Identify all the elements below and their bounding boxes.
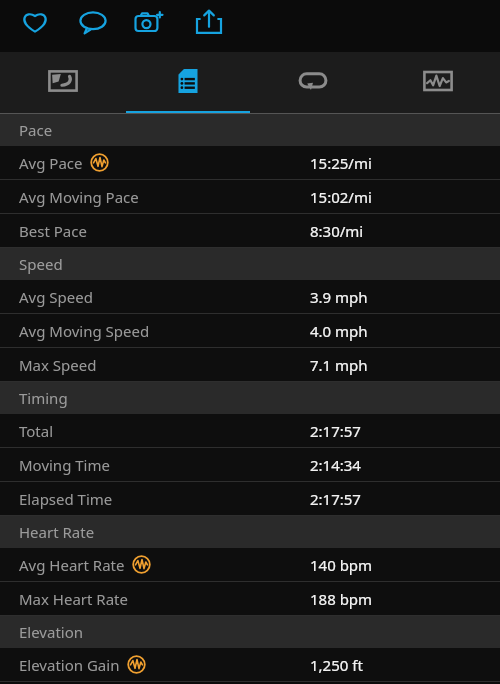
staticText: 140 bpm [310, 555, 373, 575]
button[interactable]: Avg Moving Speed [0, 314, 500, 348]
staticText: 2:17:57 [310, 421, 361, 441]
button[interactable]: Graphs [375, 52, 500, 114]
button[interactable]: Comment [72, 0, 114, 44]
button[interactable]: Best Pace [0, 214, 500, 248]
staticText: 8:30/mi [310, 221, 364, 241]
button[interactable]: Share [188, 0, 230, 44]
button[interactable]: Details [125, 52, 250, 114]
staticText: 15:02/mi [310, 187, 372, 207]
staticText: Max Speed [19, 355, 97, 375]
staticText: Best Pace [19, 221, 87, 241]
staticText: Pace [19, 120, 53, 140]
staticText: 15:25/mi [310, 153, 372, 173]
button[interactable]: Map [0, 52, 125, 114]
button[interactable]: Total [0, 414, 500, 448]
button[interactable]: Avg Moving Pace [0, 180, 500, 214]
button[interactable]: Max Heart Rate [0, 582, 500, 616]
staticText: Max Heart Rate [19, 589, 128, 609]
staticText: Total [19, 421, 54, 441]
staticText: Elevation Gain [19, 655, 120, 675]
button[interactable]: Like [14, 0, 56, 44]
staticText: 1,250 ft [310, 655, 363, 675]
staticText: 7.1 mph [310, 355, 368, 375]
staticText: 2:17:57 [310, 489, 361, 509]
button[interactable]: Avg Pace [0, 146, 500, 180]
button[interactable]: Max Speed [0, 348, 500, 382]
staticText: Moving Time [19, 455, 110, 475]
staticText: Avg Moving Speed [19, 321, 150, 341]
staticText: Elevation [19, 622, 84, 642]
staticText: 2:14:34 [310, 455, 361, 475]
staticText: Heart Rate [19, 522, 95, 542]
staticText: Elapsed Time [19, 489, 113, 509]
staticText: 4.0 mph [310, 321, 368, 341]
button[interactable]: Elevation Gain [0, 648, 500, 682]
staticText: 188 bpm [310, 589, 373, 609]
staticText: Timing [19, 388, 68, 408]
button[interactable]: Add photo [128, 0, 170, 44]
staticText: Avg Pace [19, 153, 83, 173]
staticText: 3.9 mph [310, 287, 368, 307]
staticText: Avg Heart Rate [19, 555, 125, 575]
button[interactable]: Moving Time [0, 448, 500, 482]
button[interactable]: Avg Heart Rate [0, 548, 500, 582]
button[interactable]: Laps [250, 52, 375, 114]
button[interactable]: Avg Speed [0, 280, 500, 314]
staticText: Avg Moving Pace [19, 187, 139, 207]
staticText: Speed [19, 254, 63, 274]
button[interactable]: Elapsed Time [0, 482, 500, 516]
staticText: Avg Speed [19, 287, 93, 307]
